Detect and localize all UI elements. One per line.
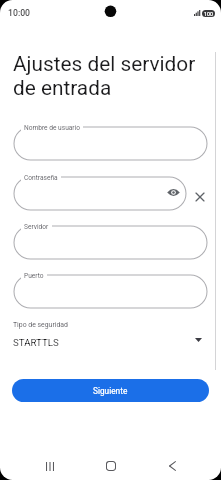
button[interactable]: Inicio	[101, 454, 120, 478]
staticText: STARTTLS	[13, 337, 59, 348]
button[interactable]: Contraseña	[14, 177, 186, 210]
staticText: Siguiente	[93, 386, 128, 396]
button[interactable]: Mostrar contraseña	[166, 185, 181, 200]
button[interactable]: Nombre de usuario	[14, 127, 207, 160]
button[interactable]: Puerto	[14, 275, 207, 308]
staticText: 10:00	[8, 8, 31, 18]
button[interactable]: Siguiente	[12, 379, 209, 402]
staticText: Nombre de usuario	[24, 124, 80, 132]
button[interactable]: Tipo de seguridad	[13, 318, 203, 352]
staticText: Tipo de seguridad	[13, 321, 68, 329]
staticText: 100	[204, 11, 213, 17]
staticText: Servidor	[24, 223, 49, 231]
button[interactable]: Servidor	[14, 226, 207, 259]
button[interactable]: Recientes	[40, 454, 59, 478]
staticText: Ajustes del servidor de entrada	[13, 52, 201, 100]
staticText: Puerto	[24, 272, 44, 280]
staticText: Contraseña	[24, 174, 58, 182]
button[interactable]: Borrar	[193, 190, 207, 204]
button[interactable]: Atrás	[163, 454, 182, 478]
